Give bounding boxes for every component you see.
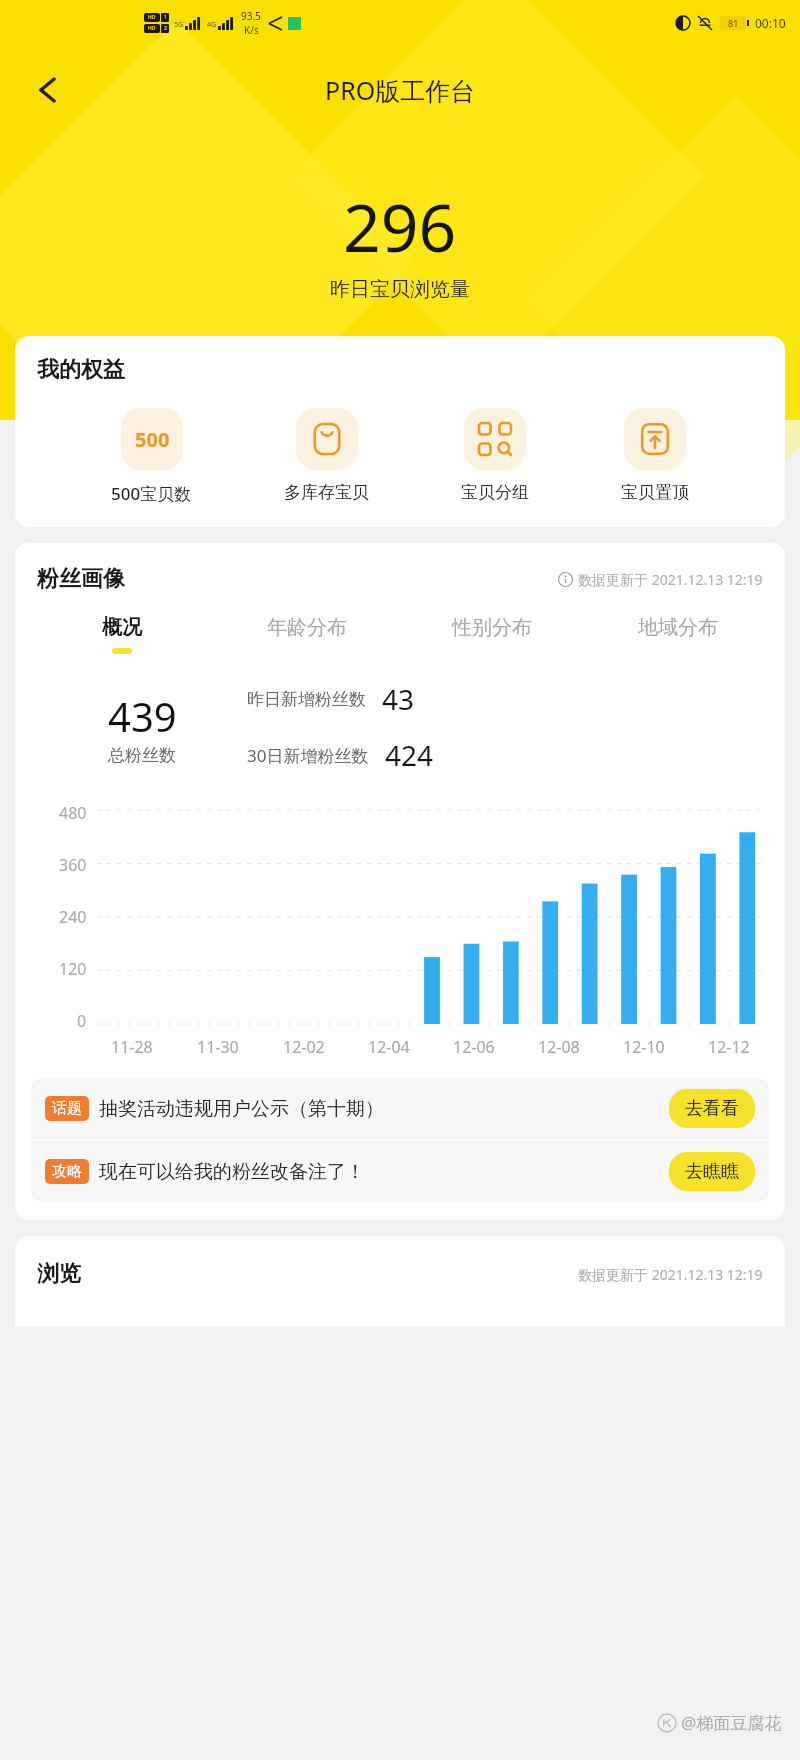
staticText: 240 (59, 906, 87, 928)
staticText: 424 (385, 736, 434, 774)
button[interactable]: 多库存宝贝 (280, 408, 373, 503)
staticText: 抽奖活动违规用户公示（第十期） (99, 1097, 384, 1121)
staticText: 2 (164, 25, 167, 32)
staticText: 12-02 (283, 1036, 325, 1058)
button[interactable]: 500 (107, 408, 196, 505)
staticText: 话题 (52, 1099, 82, 1118)
staticText: 439 (108, 689, 177, 743)
button[interactable]: 性别分布 (399, 615, 585, 654)
staticText: HD (148, 25, 156, 32)
staticText: 5G (174, 20, 184, 30)
staticText: 11-28 (111, 1036, 153, 1058)
staticText: 0 (77, 1010, 87, 1032)
staticText: PRO版工作台 (325, 73, 476, 107)
staticText: 现在可以给我的粉丝改备注了！ (99, 1160, 365, 1184)
staticText: 12-10 (623, 1036, 665, 1058)
staticText: 昨日新增粉丝数 (247, 689, 366, 710)
staticText: 00:10 (755, 15, 786, 31)
button[interactable]: 话题 (31, 1078, 769, 1139)
staticText: 地域分布 (638, 615, 718, 640)
staticText: 360 (59, 854, 87, 876)
staticText: 120 (59, 958, 87, 980)
staticText: 宝贝置顶 (621, 482, 689, 503)
staticText: @梯面豆腐花 (681, 1711, 782, 1734)
staticText: 多库存宝贝 (284, 482, 369, 503)
staticText: 性别分布 (452, 615, 532, 640)
staticText: 去瞧瞧 (685, 1160, 739, 1183)
button[interactable]: 宝贝分组 (457, 408, 533, 503)
staticText: 年龄分布 (267, 615, 347, 640)
staticText: 去看看 (685, 1097, 739, 1120)
staticText: 81 (728, 17, 739, 29)
staticText: 1 (164, 14, 167, 21)
button[interactable]: 地域分布 (585, 615, 771, 654)
button[interactable]: 攻略 (31, 1141, 769, 1202)
staticText: 12-08 (538, 1036, 580, 1058)
button[interactable]: 年龄分布 (214, 615, 399, 654)
staticText: 粉丝画像 (37, 565, 125, 593)
staticText: 昨日宝贝浏览量 (330, 277, 470, 302)
staticText: 12-12 (708, 1036, 750, 1058)
staticText: HD (148, 14, 156, 21)
staticText: 500 (135, 426, 170, 453)
staticText: 概况 (102, 615, 142, 640)
staticText: 11-30 (197, 1036, 239, 1058)
staticText: 93.5 (241, 9, 261, 23)
button[interactable]: 去看看 (669, 1089, 755, 1128)
staticText: 数据更新于 2021.12.13 12:19 (578, 1265, 763, 1284)
staticText: 攻略 (52, 1162, 82, 1181)
staticText: 总粉丝数 (108, 745, 176, 766)
staticText: K/s (244, 23, 259, 37)
staticText: 我的权益 (37, 356, 125, 384)
staticText: 4G (207, 20, 217, 30)
staticText: 12-06 (453, 1036, 495, 1058)
staticText: 43 (382, 680, 415, 718)
staticText: 500宝贝数 (111, 482, 192, 505)
staticText: 296 (343, 181, 457, 271)
button[interactable]: 宝贝置顶 (617, 408, 693, 503)
staticText: 浏览 (37, 1260, 81, 1288)
staticText: 宝贝分组 (461, 482, 529, 503)
staticText: 数据更新于 2021.12.13 12:19 (578, 570, 763, 589)
staticText: 30日新增粉丝数 (247, 744, 369, 767)
staticText: 480 (59, 802, 87, 824)
staticText: 12-04 (368, 1036, 410, 1058)
button[interactable]: 概况 (29, 615, 214, 654)
button[interactable]: Back (22, 64, 74, 116)
button[interactable]: 去瞧瞧 (669, 1152, 755, 1191)
